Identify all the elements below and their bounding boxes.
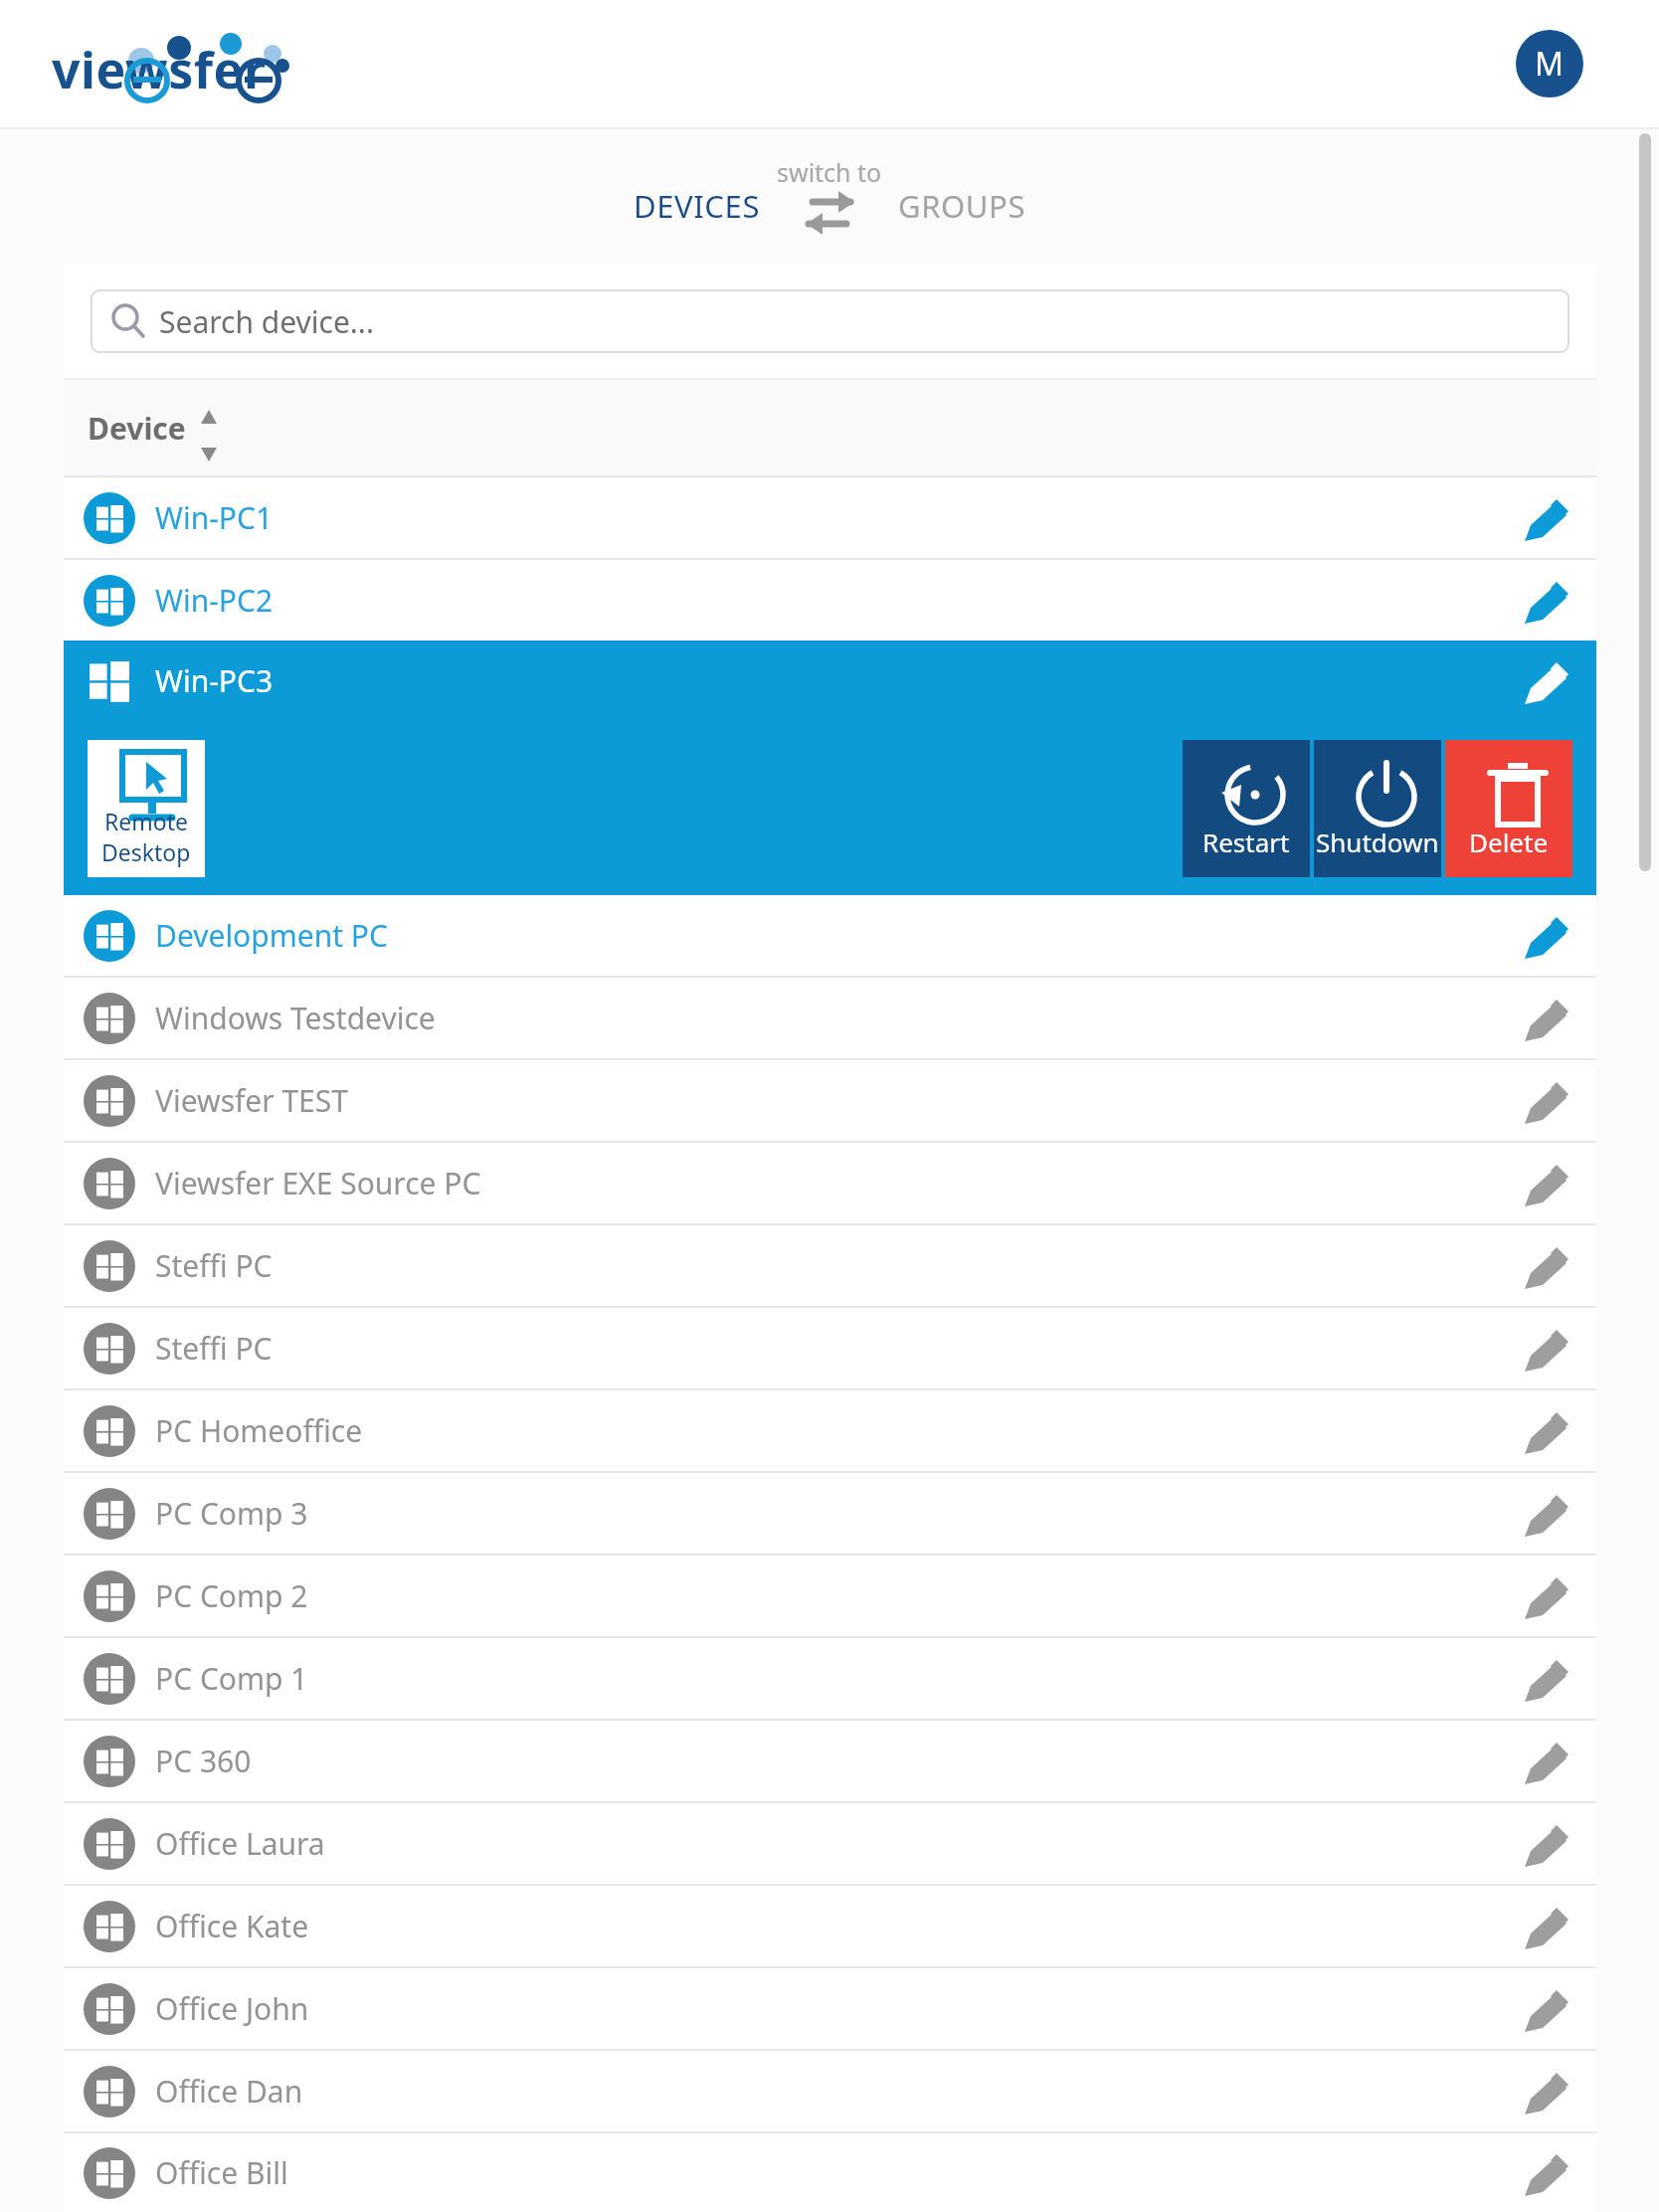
- staticText: Win-PC2: [155, 580, 274, 621]
- staticText: PC Homeoffice: [155, 1410, 363, 1451]
- button[interactable]: Edit PC 360: [1507, 1727, 1576, 1796]
- button[interactable]: PC Comp 2: [64, 1556, 1596, 1636]
- staticText: M: [1535, 42, 1565, 86]
- staticText: Remote: [104, 806, 188, 836]
- button[interactable]: Steffi PC: [64, 1308, 1596, 1388]
- button[interactable]: Development PC: [64, 895, 1596, 976]
- staticText: PC 360: [155, 1741, 252, 1781]
- button[interactable]: Edit Viewsfer TEST: [1507, 1066, 1576, 1136]
- button[interactable]: Delete: [1445, 740, 1572, 877]
- staticText: PC Comp 3: [155, 1493, 308, 1534]
- button[interactable]: Edit Steffi PC: [1507, 1231, 1576, 1301]
- staticText: GROUPS: [898, 185, 1026, 227]
- button[interactable]: Edit PC Comp 2: [1507, 1562, 1576, 1631]
- staticText: Office Dan: [155, 2071, 303, 2112]
- staticText: Office John: [155, 1988, 309, 2029]
- button[interactable]: Switch: [807, 186, 852, 226]
- button[interactable]: Edit Viewsfer EXE Source PC: [1507, 1149, 1576, 1218]
- staticText: Office Bill: [155, 2152, 288, 2193]
- button[interactable]: Viewsfer EXE Source PC: [64, 1143, 1596, 1223]
- staticText: Delete: [1469, 825, 1549, 859]
- staticText: PC Comp 2: [155, 1575, 308, 1616]
- button[interactable]: Win-PC3: [64, 641, 1596, 721]
- button[interactable]: Edit Office Dan: [1507, 2057, 1576, 2126]
- button[interactable]: Remote: [88, 740, 205, 877]
- button[interactable]: Windows Testdevice: [64, 978, 1596, 1058]
- staticText: Development PC: [155, 915, 388, 956]
- button[interactable]: Office Dan: [64, 2051, 1596, 2131]
- button[interactable]: Steffi PC: [64, 1225, 1596, 1306]
- button[interactable]: Shutdown: [1314, 740, 1441, 877]
- button[interactable]: Edit Win-PC2: [1507, 566, 1576, 636]
- button[interactable]: Edit PC Comp 1: [1507, 1644, 1576, 1714]
- staticText: Win-PC1: [155, 497, 274, 538]
- button[interactable]: Edit Office Kate: [1507, 1892, 1576, 1961]
- staticText: PC Comp 1: [155, 1658, 308, 1699]
- button[interactable]: PC Comp 1: [64, 1638, 1596, 1719]
- button[interactable]: GROUPS: [892, 185, 1032, 227]
- button[interactable]: Edit PC Homeoffice: [1507, 1396, 1576, 1466]
- staticText: Shutdown: [1316, 825, 1439, 859]
- button[interactable]: Edit Development PC: [1507, 901, 1576, 971]
- staticText: Office Laura: [155, 1823, 325, 1864]
- staticText: Win-PC3: [155, 660, 274, 701]
- button[interactable]: Edit Win-PC1: [1507, 483, 1576, 553]
- staticText: Restart: [1202, 825, 1290, 859]
- staticText: Viewsfer EXE Source PC: [155, 1163, 481, 1203]
- button[interactable]: PC Homeoffice: [64, 1390, 1596, 1471]
- button[interactable]: Office Laura: [64, 1803, 1596, 1884]
- staticText: Steffi PC: [155, 1328, 273, 1369]
- button[interactable]: PC Comp 3: [64, 1473, 1596, 1554]
- staticText: Viewsfer TEST: [155, 1080, 348, 1121]
- button[interactable]: Office Kate: [64, 1886, 1596, 1966]
- button[interactable]: Edit Steffi PC: [1507, 1314, 1576, 1383]
- button[interactable]: Edit Win-PC3: [1507, 646, 1576, 716]
- button[interactable]: Edit PC Comp 3: [1507, 1479, 1576, 1549]
- button[interactable]: Edit Windows Testdevice: [1507, 984, 1576, 1053]
- button[interactable]: Office Bill: [64, 2133, 1596, 2212]
- button[interactable]: Edit Office Laura: [1507, 1809, 1576, 1879]
- staticText: Desktop: [101, 836, 191, 867]
- button[interactable]: Viewsfer TEST: [64, 1060, 1596, 1141]
- staticText: Device: [88, 408, 186, 449]
- button[interactable]: Office John: [64, 1968, 1596, 2049]
- button[interactable]: Search device...: [92, 290, 1568, 352]
- button[interactable]: Restart: [1183, 740, 1310, 877]
- button[interactable]: Win-PC1: [64, 477, 1596, 558]
- button[interactable]: Account: [1516, 30, 1583, 97]
- staticText: Steffi PC: [155, 1245, 273, 1286]
- staticText: viewsfer: [52, 36, 267, 103]
- button[interactable]: Edit Office John: [1507, 1974, 1576, 2044]
- button[interactable]: DEVICES: [628, 185, 767, 227]
- button[interactable]: PC 360: [64, 1721, 1596, 1801]
- button[interactable]: Edit Office Bill: [1507, 2138, 1576, 2208]
- button[interactable]: Win-PC2: [64, 560, 1596, 641]
- staticText: switch to: [777, 155, 882, 189]
- staticText: Search device...: [159, 301, 374, 342]
- button[interactable]: Device: [64, 380, 1596, 475]
- staticText: Office Kate: [155, 1906, 309, 1946]
- staticText: Windows Testdevice: [155, 998, 436, 1038]
- staticText: DEVICES: [634, 185, 761, 227]
